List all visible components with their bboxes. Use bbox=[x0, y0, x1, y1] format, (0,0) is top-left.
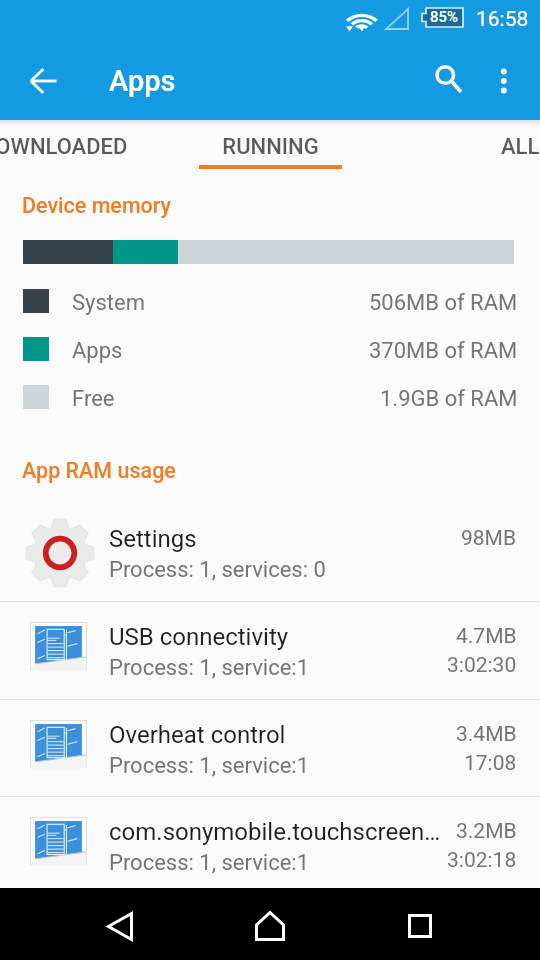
button[interactable]: Back bbox=[70, 888, 170, 960]
staticText: 3:02:18 bbox=[447, 848, 517, 873]
staticText: 4.7MB bbox=[456, 624, 517, 649]
staticText: 506MB of RAM bbox=[369, 290, 518, 316]
staticText: 17:08 bbox=[464, 751, 517, 776]
button[interactable]: Search bbox=[419, 52, 475, 108]
button[interactable]: com.sonymobile.touchscreen… bbox=[0, 797, 540, 894]
staticText: App RAM usage bbox=[22, 458, 176, 483]
staticText: Apps bbox=[109, 64, 176, 98]
button[interactable]: ALL bbox=[440, 120, 540, 170]
staticText: 370MB of RAM bbox=[369, 338, 518, 364]
button[interactable]: Settings bbox=[0, 504, 540, 601]
button[interactable]: More options bbox=[476, 52, 532, 108]
staticText: Device memory bbox=[22, 193, 172, 218]
staticText: 3.2MB bbox=[456, 819, 517, 844]
staticText: RUNNING bbox=[222, 134, 319, 160]
button[interactable]: Navigate up bbox=[16, 55, 68, 107]
button[interactable]: RUNNING bbox=[199, 120, 342, 170]
staticText: Process: 1, service:1 bbox=[109, 655, 310, 681]
staticText: Apps bbox=[72, 338, 123, 364]
staticText: USB connectivity bbox=[109, 623, 289, 651]
button[interactable]: Home bbox=[220, 888, 320, 960]
staticText: Process: 1, services: 0 bbox=[109, 557, 326, 583]
staticText: ALL bbox=[501, 134, 540, 160]
staticText: System bbox=[72, 290, 145, 316]
staticText: Free bbox=[72, 386, 115, 412]
staticText: Overheat control bbox=[109, 721, 286, 749]
button[interactable]: DOWNLOADED bbox=[0, 120, 128, 170]
staticText: 16:58 bbox=[476, 7, 529, 32]
staticText: Process: 1, service:1 bbox=[109, 753, 310, 779]
staticText: 1.9GB of RAM bbox=[380, 386, 518, 412]
staticText: 85% bbox=[430, 8, 459, 26]
staticText: 3.4MB bbox=[456, 722, 517, 747]
button[interactable]: USB connectivity bbox=[0, 602, 540, 699]
button[interactable]: Recent apps bbox=[370, 888, 470, 960]
staticText: com.sonymobile.touchscreen… bbox=[109, 818, 441, 846]
button[interactable]: Overheat control bbox=[0, 700, 540, 797]
staticText: 3:02:30 bbox=[447, 653, 517, 678]
staticText: 98MB bbox=[461, 526, 517, 551]
staticText: Settings bbox=[109, 525, 197, 553]
staticText: Process: 1, service:1 bbox=[109, 850, 310, 876]
staticText: DOWNLOADED bbox=[0, 134, 128, 160]
